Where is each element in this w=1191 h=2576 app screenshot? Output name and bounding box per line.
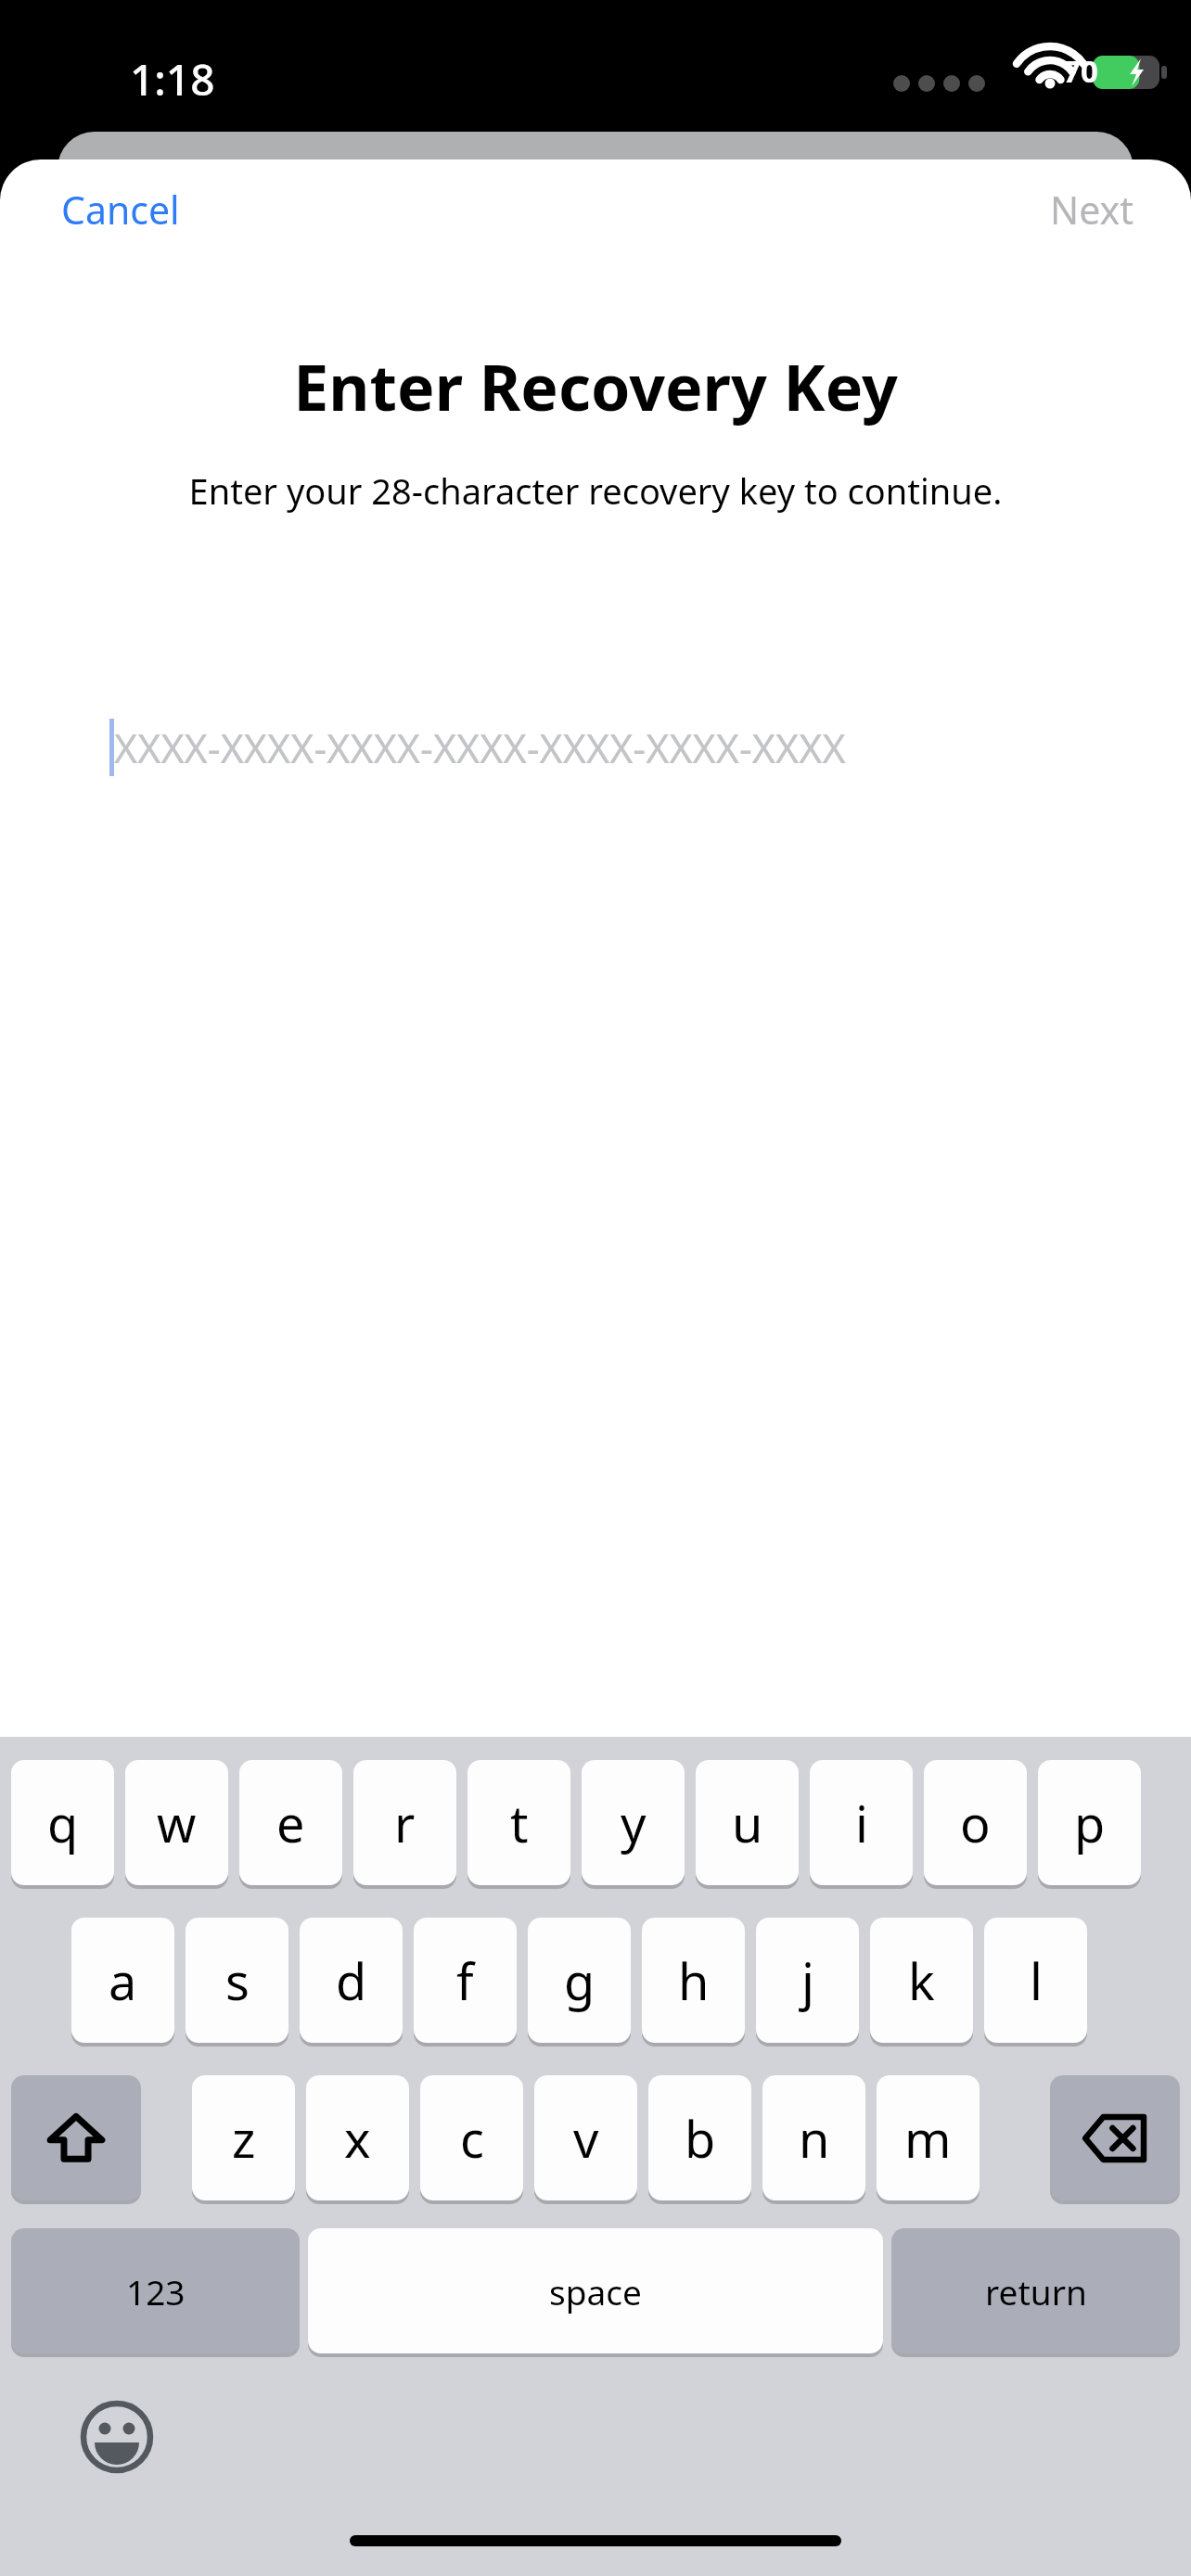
staticText: z <box>232 2104 256 2173</box>
staticText: h <box>678 1946 710 2015</box>
staticText: l <box>1030 1946 1043 2015</box>
button[interactable]: l <box>984 1918 1087 2048</box>
staticText: q <box>47 1789 79 1857</box>
staticText: 123 <box>126 2268 186 2315</box>
staticText: s <box>225 1946 250 2015</box>
staticText: return <box>985 2268 1087 2315</box>
button[interactable]: Cancel <box>0 163 241 256</box>
button[interactable]: r <box>353 1760 456 1891</box>
staticText: m <box>904 2104 952 2173</box>
button[interactable]: z <box>192 2075 295 2200</box>
staticText: y <box>621 1789 647 1857</box>
button[interactable]: j <box>756 1918 859 2048</box>
button[interactable]: c <box>420 2075 523 2200</box>
button[interactable]: b <box>648 2075 751 2200</box>
staticText: k <box>908 1946 935 2015</box>
staticText: x <box>344 2104 371 2173</box>
staticText: Enter Recovery Key <box>0 343 1191 429</box>
staticText: c <box>460 2104 484 2173</box>
staticText: w <box>157 1789 197 1857</box>
staticText: a <box>109 1946 137 2015</box>
staticText: d <box>336 1946 367 2015</box>
button[interactable]: u <box>696 1760 799 1891</box>
staticText: Enter your 28-character recovery key to … <box>37 466 1154 515</box>
button[interactable]: y <box>582 1760 685 1891</box>
button[interactable]: space <box>308 2228 883 2353</box>
staticText: e <box>276 1789 305 1857</box>
button[interactable]: Shift <box>11 2075 141 2200</box>
button[interactable]: v <box>534 2075 637 2200</box>
button[interactable]: s <box>186 1918 288 2048</box>
button[interactable]: f <box>414 1918 517 2048</box>
staticText: i <box>855 1789 868 1857</box>
button[interactable]: t <box>467 1760 570 1891</box>
staticText: j <box>801 1946 814 2015</box>
button[interactable]: x <box>306 2075 409 2200</box>
button[interactable]: Backspace <box>1050 2075 1180 2200</box>
button[interactable]: n <box>762 2075 865 2200</box>
staticText: o <box>960 1789 991 1857</box>
staticText: p <box>1074 1789 1106 1857</box>
button[interactable]: m <box>877 2075 980 2200</box>
staticText: v <box>573 2104 599 2173</box>
button[interactable]: e <box>239 1760 342 1891</box>
button[interactable]: o <box>924 1760 1027 1891</box>
button[interactable]: p <box>1038 1760 1141 1891</box>
staticText: space <box>549 2268 642 2315</box>
button[interactable]: return <box>891 2228 1180 2353</box>
button[interactable]: i <box>810 1760 913 1891</box>
staticText: Next <box>1050 184 1133 236</box>
staticText: t <box>510 1789 529 1857</box>
staticText: Cancel <box>61 184 180 236</box>
staticText: r <box>394 1789 416 1857</box>
button[interactable]: h <box>642 1918 745 2048</box>
staticText: f <box>456 1946 474 2015</box>
button[interactable]: g <box>528 1918 631 2048</box>
staticText: 1:18 <box>130 50 215 108</box>
button[interactable]: d <box>300 1918 403 2048</box>
button[interactable]: a <box>71 1918 174 2048</box>
button[interactable]: XXXX-XXXX-XXXX-XXXX-XXXX-XXXX-XXXX <box>0 696 1191 798</box>
staticText: 70 <box>1063 50 1098 92</box>
button[interactable]: k <box>870 1918 973 2048</box>
button[interactable]: q <box>11 1760 114 1891</box>
staticText: XXXX-XXXX-XXXX-XXXX-XXXX-XXXX-XXXX <box>114 721 846 775</box>
button[interactable]: Next <box>992 163 1191 256</box>
button[interactable]: w <box>125 1760 228 1891</box>
button[interactable]: 123 <box>11 2228 300 2353</box>
button[interactable]: Emoji keyboard <box>56 2386 178 2488</box>
staticText: u <box>732 1789 763 1857</box>
staticText: g <box>564 1946 595 2015</box>
staticText: b <box>685 2104 716 2173</box>
staticText: n <box>799 2104 830 2173</box>
